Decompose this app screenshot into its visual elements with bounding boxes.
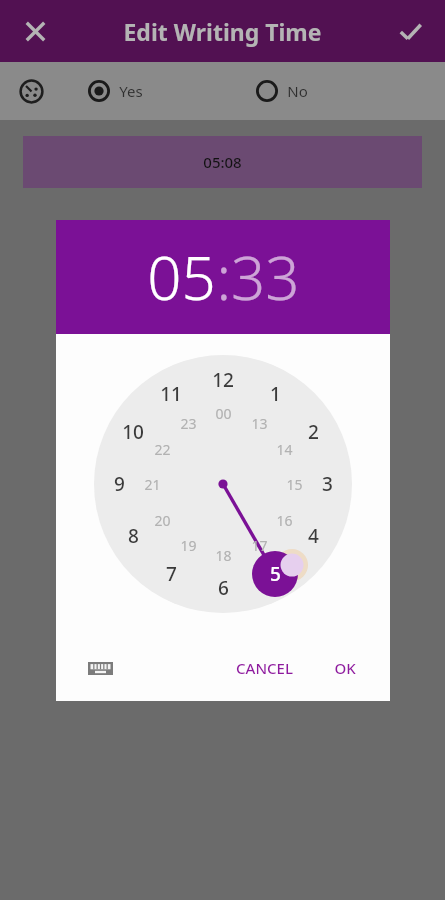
staticText: OK — [334, 658, 356, 678]
staticText: Edit Writing Time — [123, 16, 322, 47]
button[interactable]: Close — [8, 4, 62, 58]
staticText: 14 — [276, 440, 293, 459]
staticText: 18 — [215, 546, 232, 565]
staticText: 8 — [128, 523, 139, 549]
staticText: 16 — [276, 511, 293, 530]
staticText: :33 — [216, 236, 300, 318]
staticText: 7 — [166, 561, 177, 587]
staticText: 05 — [147, 236, 216, 318]
staticText: Yes — [119, 81, 143, 101]
staticText: 12 — [212, 367, 234, 393]
staticText: 05:08 — [203, 152, 242, 172]
staticText: 20 — [154, 511, 171, 530]
staticText: 3 — [322, 471, 333, 497]
staticText: 13 — [251, 414, 268, 433]
staticText: 22 — [154, 440, 171, 459]
staticText: 4 — [308, 523, 319, 549]
staticText: CANCEL — [236, 658, 293, 678]
button[interactable]: 05 — [56, 220, 390, 334]
staticText: 6 — [218, 575, 229, 601]
staticText: 15 — [286, 475, 303, 494]
staticText: 00 — [215, 404, 232, 423]
button[interactable]: CANCEL — [224, 648, 305, 688]
button[interactable]: No — [256, 80, 308, 102]
staticText: 21 — [144, 475, 161, 494]
button[interactable]: OK — [322, 648, 368, 688]
button[interactable]: Yes — [88, 80, 143, 102]
button[interactable]: Timer — [14, 74, 48, 108]
button[interactable]: Save — [383, 4, 437, 58]
staticText: 10 — [122, 419, 144, 445]
button[interactable]: 05:08 — [23, 136, 422, 188]
button[interactable]: Switch to text input — [82, 650, 118, 686]
staticText: 5 — [270, 561, 281, 587]
staticText: 19 — [180, 536, 197, 555]
staticText: 17 — [251, 536, 268, 555]
staticText: No — [287, 81, 308, 101]
staticText: 11 — [160, 381, 182, 407]
staticText: 23 — [180, 414, 197, 433]
staticText: 1 — [270, 381, 281, 407]
staticText: 9 — [114, 471, 125, 497]
staticText: 2 — [308, 419, 319, 445]
